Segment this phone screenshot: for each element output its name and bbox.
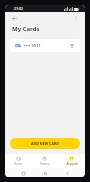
button[interactable]: Home: [41, 169, 49, 177]
staticText: Home: [14, 162, 22, 166]
staticText: History: [40, 162, 50, 166]
staticText: Account: [66, 162, 78, 166]
button[interactable]: VISA: [10, 39, 80, 52]
button[interactable]: ADD NEW CARD: [10, 138, 80, 149]
button[interactable]: Delete card: [68, 42, 76, 50]
button[interactable]: Back: [63, 169, 71, 177]
staticText: •••• 9511: [24, 43, 41, 49]
button[interactable]: History: [31, 154, 58, 168]
staticText: ADD NEW CARD: [31, 141, 59, 146]
staticText: 21:02: [14, 6, 23, 11]
button[interactable]: Home: [5, 154, 31, 168]
staticText: My Cards: [12, 25, 40, 33]
button[interactable]: Recent apps: [19, 169, 27, 177]
staticText: VISA: [15, 44, 21, 48]
button[interactable]: More options: [71, 13, 81, 23]
button[interactable]: Account: [58, 154, 85, 168]
button[interactable]: Back: [9, 13, 19, 23]
